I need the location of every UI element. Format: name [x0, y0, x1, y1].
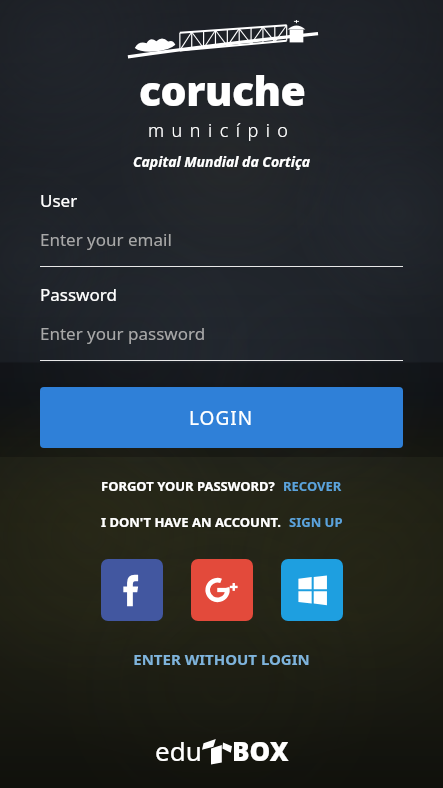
staticText: BOX	[232, 733, 289, 768]
button[interactable]: SIGN UP	[281, 509, 343, 535]
staticText: SIGN UP	[289, 513, 343, 531]
staticText: Password	[40, 283, 117, 306]
staticText: Enter your password	[40, 322, 206, 345]
button[interactable]: Sign in with Facebook	[101, 559, 163, 621]
button[interactable]: ENTER WITHOUT LOGIN	[119, 643, 324, 675]
button[interactable]: LOGIN	[40, 387, 403, 448]
staticText: coruche	[139, 62, 306, 118]
staticText: Capital Mundial da Cortiça	[133, 152, 311, 171]
button[interactable]: Sign in with Google Plus	[191, 559, 253, 621]
button[interactable]: Enter your password	[40, 306, 403, 360]
button[interactable]: RECOVER	[275, 473, 342, 499]
button[interactable]: Sign in with Microsoft	[281, 559, 343, 621]
staticText: ENTER WITHOUT LOGIN	[133, 649, 310, 669]
button[interactable]: Enter your email	[40, 212, 403, 266]
staticText: LOGIN	[189, 405, 254, 431]
staticText: I DON'T HAVE AN ACCOUNT.	[101, 513, 281, 531]
staticText: User	[40, 189, 78, 212]
staticText: Enter your email	[40, 228, 172, 251]
staticText: município	[148, 118, 296, 143]
staticText: FORGOT YOUR PASSWORD?	[101, 477, 275, 495]
staticText: RECOVER	[283, 477, 342, 495]
staticText: edu	[155, 733, 202, 768]
